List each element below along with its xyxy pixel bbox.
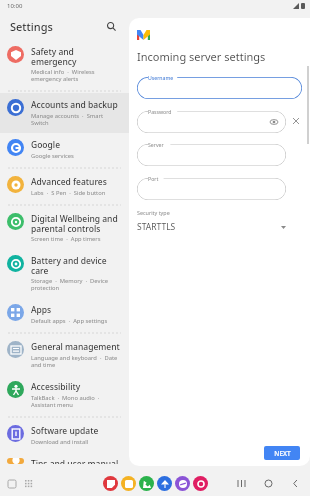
button[interactable]: App xyxy=(103,476,118,491)
staticText: 10:00 xyxy=(7,2,23,10)
staticText: Apps xyxy=(31,304,52,316)
staticText: Storage · Memory · Device protection xyxy=(31,277,121,292)
staticText: Security type xyxy=(137,209,170,216)
button[interactable]: All apps xyxy=(23,478,34,489)
button[interactable]: Recents xyxy=(235,477,248,490)
button[interactable]: Battery and device care xyxy=(0,249,129,298)
button[interactable]: Software update xyxy=(0,419,129,452)
staticText: Medical info · Wireless emergency alerts xyxy=(31,68,121,83)
staticText: Accessibility xyxy=(31,381,81,393)
staticText: Tips and user manual xyxy=(31,458,119,464)
button[interactable]: Search xyxy=(103,18,119,34)
button[interactable]: Clear xyxy=(289,114,302,127)
staticText: Download and install xyxy=(31,438,89,446)
button[interactable]: Home xyxy=(262,477,275,490)
button[interactable]: App xyxy=(157,476,172,491)
staticText: Labs · S Pen · Side button xyxy=(31,189,106,197)
button[interactable]: Accessibility xyxy=(0,375,129,415)
button[interactable]: Safety and emergency xyxy=(0,40,129,89)
staticText: Google services xyxy=(31,152,74,160)
button[interactable]: Google xyxy=(0,133,129,166)
staticText: Port xyxy=(148,175,159,182)
staticText: Accounts and backup xyxy=(31,99,118,111)
staticText: Settings xyxy=(10,19,53,34)
button[interactable]: Apps xyxy=(0,298,129,331)
staticText: Manage accounts · Smart Switch xyxy=(31,112,121,127)
button[interactable] xyxy=(137,77,302,99)
staticText: Google xyxy=(31,139,61,151)
staticText: Screen time · App timers xyxy=(31,235,101,243)
button[interactable]: STARTTLS xyxy=(137,221,286,233)
staticText: Digital Wellbeing and parental controls xyxy=(31,213,121,234)
button[interactable]: NEXT xyxy=(264,446,300,460)
button[interactable] xyxy=(137,111,286,133)
button[interactable]: Back xyxy=(289,477,302,490)
button[interactable]: App xyxy=(193,476,208,491)
staticText: TalkBack · Mono audio · Assistant menu xyxy=(31,394,121,409)
button[interactable]: Recent apps xyxy=(6,478,17,489)
button[interactable]: Tips and user manual xyxy=(0,452,129,470)
staticText: Server xyxy=(148,141,164,148)
button[interactable]: App xyxy=(139,476,154,491)
staticText: Advanced features xyxy=(31,176,107,188)
staticText: Software update xyxy=(31,425,99,437)
button[interactable]: Accounts and backup xyxy=(0,93,129,133)
button[interactable]: Advanced features xyxy=(0,170,129,203)
staticText: NEXT xyxy=(274,449,291,458)
staticText: Safety and emergency xyxy=(31,46,121,67)
staticText: General management xyxy=(31,341,120,353)
staticText: STARTTLS xyxy=(137,221,176,233)
staticText: Username xyxy=(148,74,174,81)
button[interactable]: Digital Wellbeing and parental controls xyxy=(0,207,129,249)
staticText: Password xyxy=(148,108,172,115)
staticText: Incoming server settings xyxy=(137,49,266,64)
staticText: Battery and device care xyxy=(31,255,121,276)
button[interactable]: Show password xyxy=(268,116,280,128)
staticText: Default apps · App settings xyxy=(31,317,108,325)
button[interactable]: General management xyxy=(0,335,129,375)
button[interactable]: App xyxy=(121,476,136,491)
button[interactable]: App xyxy=(175,476,190,491)
button[interactable] xyxy=(137,178,286,200)
staticText: Language and keyboard · Date and time xyxy=(31,354,121,369)
button[interactable] xyxy=(137,144,286,166)
